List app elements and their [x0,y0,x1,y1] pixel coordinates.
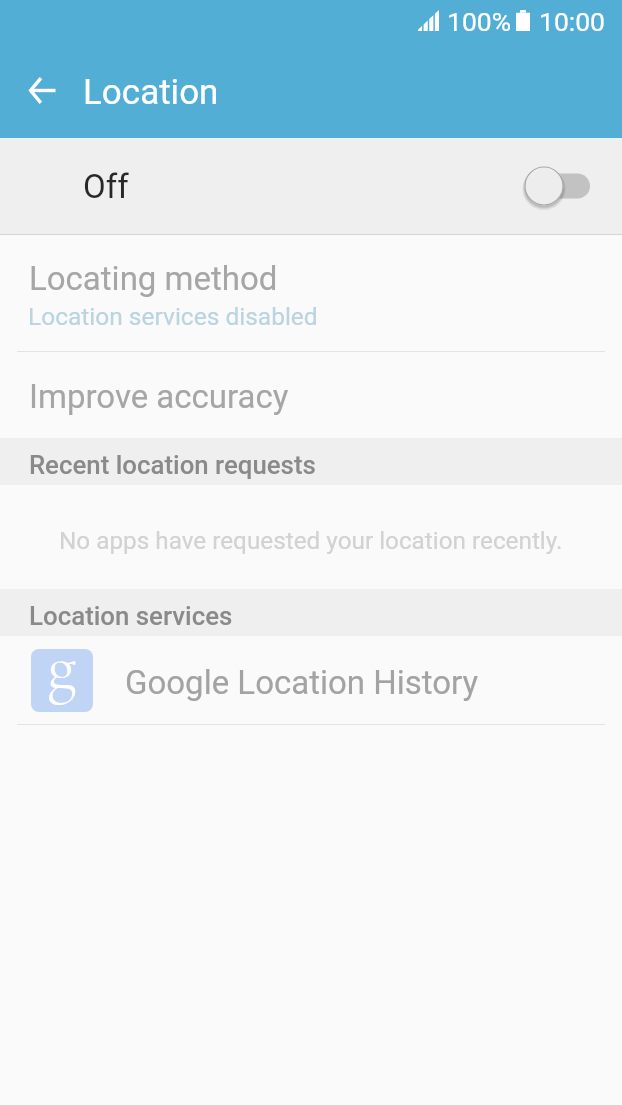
staticText: Locating method [29,259,278,298]
staticText: No apps have requested your location rec… [59,526,563,554]
staticText: Off [83,167,129,206]
button[interactable]: g [0,636,622,724]
staticText: Location services disabled [28,302,318,331]
staticText: 100% [447,6,512,37]
button[interactable]: Navigate up [13,66,69,114]
button[interactable]: Locating method [0,235,622,351]
staticText: Improve accuracy [29,377,289,416]
staticText: g [47,626,77,706]
staticText: 10:00 [539,6,605,37]
staticText: Location services [29,601,233,631]
staticText: Recent location requests [29,450,316,480]
button[interactable]: Location toggle, off [524,164,590,208]
button[interactable]: Off [0,138,622,234]
staticText: Location [83,72,219,113]
button[interactable]: Improve accuracy [0,352,622,438]
staticText: Google Location History [125,663,479,702]
